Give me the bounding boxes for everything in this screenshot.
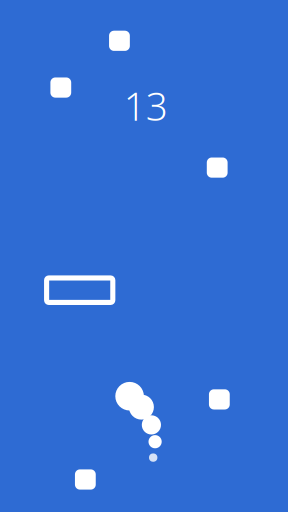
staticText: 13 xyxy=(124,80,168,131)
